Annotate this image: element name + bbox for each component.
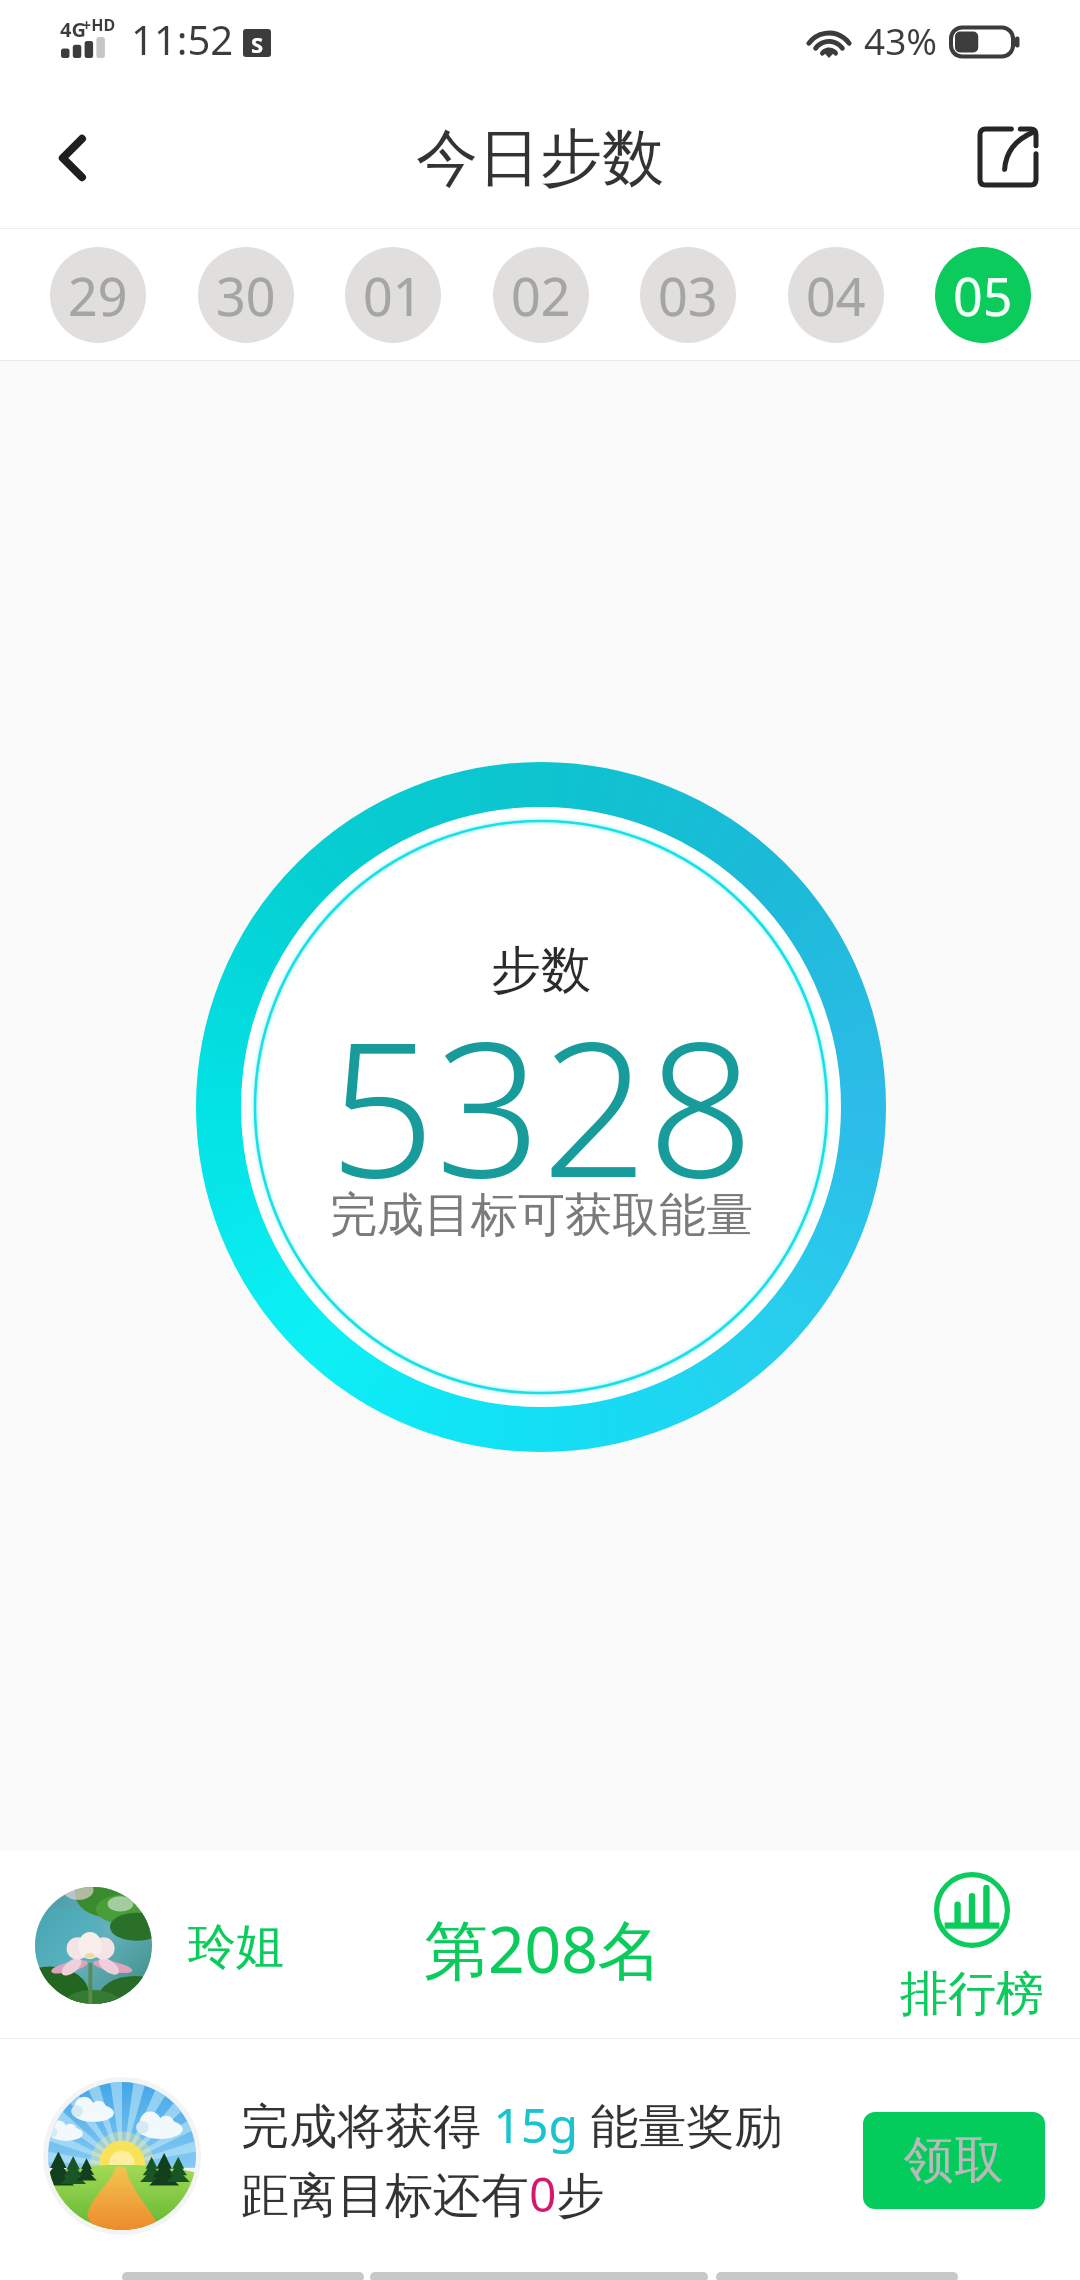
staticText: 30 [216,260,276,331]
staticText: 排行榜 [900,1964,1044,2024]
staticText: 29 [68,260,128,331]
button[interactable]: 领取 [863,2112,1045,2209]
button[interactable]: 02 [493,247,589,343]
staticText: 步数 [491,939,591,1002]
button[interactable]: 排行榜 [896,1863,1048,2033]
button[interactable]: 05 [935,247,1031,343]
staticText: 距离目标还有0步 [241,2161,605,2227]
staticText: 今日步数 [416,119,664,197]
button[interactable]: 29 [50,247,146,343]
staticText: 完成将获得 15g 能量奖励 [241,2092,783,2158]
staticText: 第208名 [424,1905,662,1992]
staticText: S [251,29,264,57]
button[interactable]: 01 [345,247,441,343]
staticText: +HD [82,14,116,36]
staticText: 完成目标可获取能量 [330,1186,753,1245]
button[interactable]: Profile avatar [35,1887,152,2004]
button[interactable]: Share [949,98,1067,216]
staticText: 11:52 [131,12,234,66]
staticText: 03 [658,260,718,331]
staticText: 玲姐 [188,1917,284,1977]
button[interactable]: 04 [788,247,884,343]
staticText: 5328 [329,978,754,1231]
staticText: 领取 [904,2129,1004,2192]
staticText: 43% [864,15,938,65]
staticText: 05 [953,260,1013,331]
staticText: 01 [363,260,423,331]
button[interactable]: 03 [640,247,736,343]
button[interactable]: Back [12,99,130,217]
button[interactable]: 30 [198,247,294,343]
staticText: 4G [60,16,86,43]
staticText: 02 [511,260,571,331]
staticText: 04 [806,260,866,331]
